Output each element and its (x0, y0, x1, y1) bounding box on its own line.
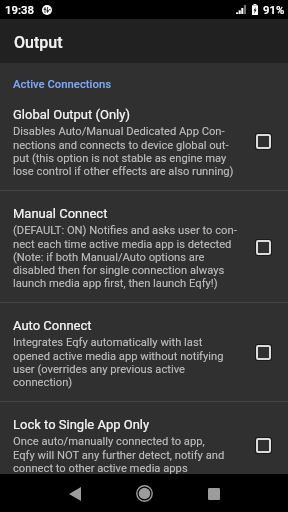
staticText: Auto Connect (13, 318, 92, 333)
button[interactable]: Home (128, 477, 161, 510)
staticText: Active Connections (13, 78, 112, 91)
staticText: Integrates Eqfy automatically with last … (13, 336, 224, 388)
staticText: 91% (263, 3, 285, 16)
staticText: Lock to Single App Only (13, 417, 150, 432)
button[interactable]: Manual Connect (0, 191, 288, 302)
staticText: Once auto/manually connected to app, Eqf… (13, 435, 225, 474)
staticText: Output (14, 33, 63, 52)
staticText: Disables Auto/Manual Dedicated App Con- … (13, 125, 234, 177)
button[interactable]: Recent apps (197, 477, 230, 510)
button[interactable]: Auto Connect (0, 303, 288, 401)
button[interactable]: Toggle Manual Connect (247, 231, 279, 263)
button[interactable]: Global Output (Only) (0, 92, 288, 190)
button[interactable]: Back (58, 477, 91, 510)
button[interactable]: Toggle Auto Connect (247, 336, 279, 368)
staticText: (DEFAULT: ON) Notifies and asks user to … (13, 224, 237, 289)
staticText: Global Output (Only) (13, 107, 130, 122)
staticText: Manual Connect (13, 206, 108, 221)
button[interactable]: Toggle Lock to Single App Only (247, 429, 279, 461)
staticText: 19:38 (5, 3, 34, 16)
button[interactable]: Toggle Global Output (Only) (247, 125, 279, 157)
button[interactable]: Lock to Single App Only (0, 402, 288, 474)
